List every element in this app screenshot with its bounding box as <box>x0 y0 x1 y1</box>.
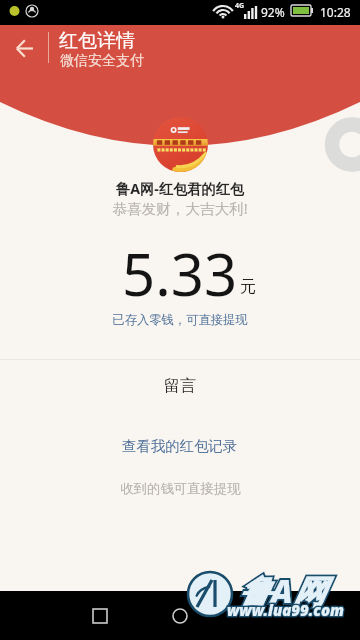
staticText: 鲁A网 <box>239 569 325 613</box>
staticText: 5.33 <box>122 234 238 313</box>
staticText: 92% <box>261 4 285 20</box>
staticText: 10:28 <box>320 4 351 20</box>
staticText: 收到的钱可直接提现 <box>120 480 241 497</box>
staticText: 鲁A网 <box>239 569 325 613</box>
button[interactable]: Home <box>166 591 194 640</box>
button[interactable]: 查看我的红包记录 <box>106 432 254 460</box>
staticText: www.lua99.com <box>227 600 344 620</box>
staticText: www.lua99.com <box>227 600 344 620</box>
staticText: 元 <box>240 277 256 297</box>
staticText: 留言 <box>164 376 196 396</box>
button[interactable]: Back <box>2 26 46 70</box>
staticText: 查看我的红包记录 <box>122 437 238 455</box>
staticText: 微信安全支付 <box>60 52 144 70</box>
staticText: 红包详情 <box>59 29 135 53</box>
staticText: 4G <box>235 1 245 11</box>
staticText: 恭喜发财，大吉大利! <box>112 198 248 218</box>
staticText: 鲁A网-红包君的红包 <box>116 179 244 198</box>
button[interactable]: Recents <box>86 591 114 640</box>
staticText: 已存入零钱，可直接提现 <box>112 312 248 327</box>
